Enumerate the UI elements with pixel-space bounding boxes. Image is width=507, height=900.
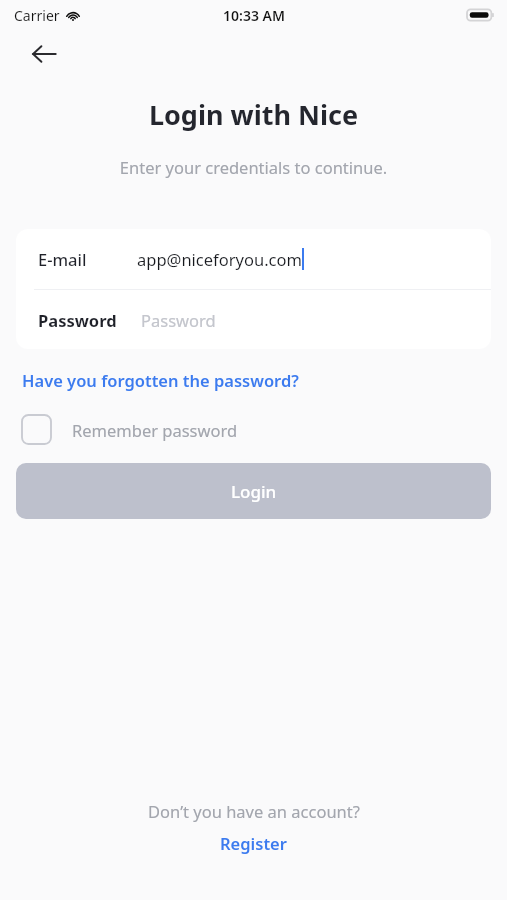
button[interactable]: Register: [220, 832, 287, 854]
button[interactable]: Have you forgotten the password?: [22, 369, 299, 391]
staticText: Remember password: [72, 419, 238, 441]
button[interactable]: Login: [16, 463, 491, 519]
staticText: Don’t you have an account?: [148, 800, 360, 822]
staticText: app@niceforyou.com: [137, 248, 302, 270]
staticText: Password: [141, 309, 216, 331]
staticText: E-mail: [38, 248, 87, 270]
staticText: Enter your credentials to continue.: [0, 156, 507, 178]
staticText: Login with Nice: [0, 96, 507, 133]
button[interactable]: Password: [16, 290, 491, 349]
staticText: 10:33 AM: [223, 6, 285, 25]
staticText: Password: [38, 309, 117, 331]
staticText: Have you forgotten the password?: [22, 369, 299, 391]
staticText: Carrier: [14, 6, 60, 25]
staticText: Register: [220, 832, 287, 854]
staticText: Login: [231, 480, 277, 503]
button[interactable]: Back: [20, 30, 68, 78]
button[interactable]: Remember password: [22, 415, 246, 444]
button[interactable]: E-mail: [16, 229, 491, 289]
